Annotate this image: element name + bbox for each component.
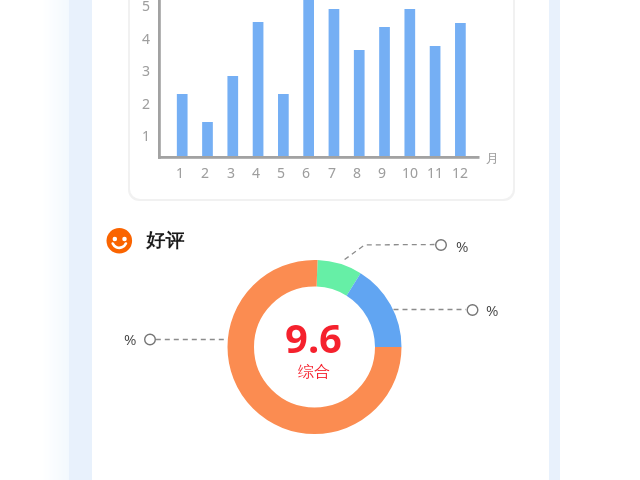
- staticText: 3: [227, 163, 236, 182]
- staticText: 4: [142, 29, 151, 48]
- staticText: 5: [142, 0, 151, 15]
- staticText: 11: [427, 163, 444, 182]
- staticText: 5: [277, 163, 286, 182]
- staticText: %: [486, 300, 499, 320]
- staticText: 2: [201, 163, 210, 182]
- staticText: 好评: [146, 229, 184, 253]
- staticText: %: [456, 236, 469, 256]
- staticText: 9: [378, 163, 387, 182]
- staticText: 综合: [298, 362, 330, 382]
- staticText: 12: [452, 163, 469, 182]
- staticText: 9.6: [285, 310, 342, 364]
- staticText: 4: [252, 163, 261, 182]
- staticText: 1: [176, 163, 185, 182]
- staticText: %: [124, 329, 137, 349]
- staticText: 月: [486, 150, 499, 166]
- staticText: 7: [328, 163, 337, 182]
- staticText: 3: [142, 61, 151, 80]
- staticText: 2: [142, 94, 151, 113]
- staticText: 8: [353, 163, 362, 182]
- staticText: 6: [302, 163, 311, 182]
- staticText: 1: [142, 126, 151, 145]
- staticText: 10: [402, 163, 419, 182]
